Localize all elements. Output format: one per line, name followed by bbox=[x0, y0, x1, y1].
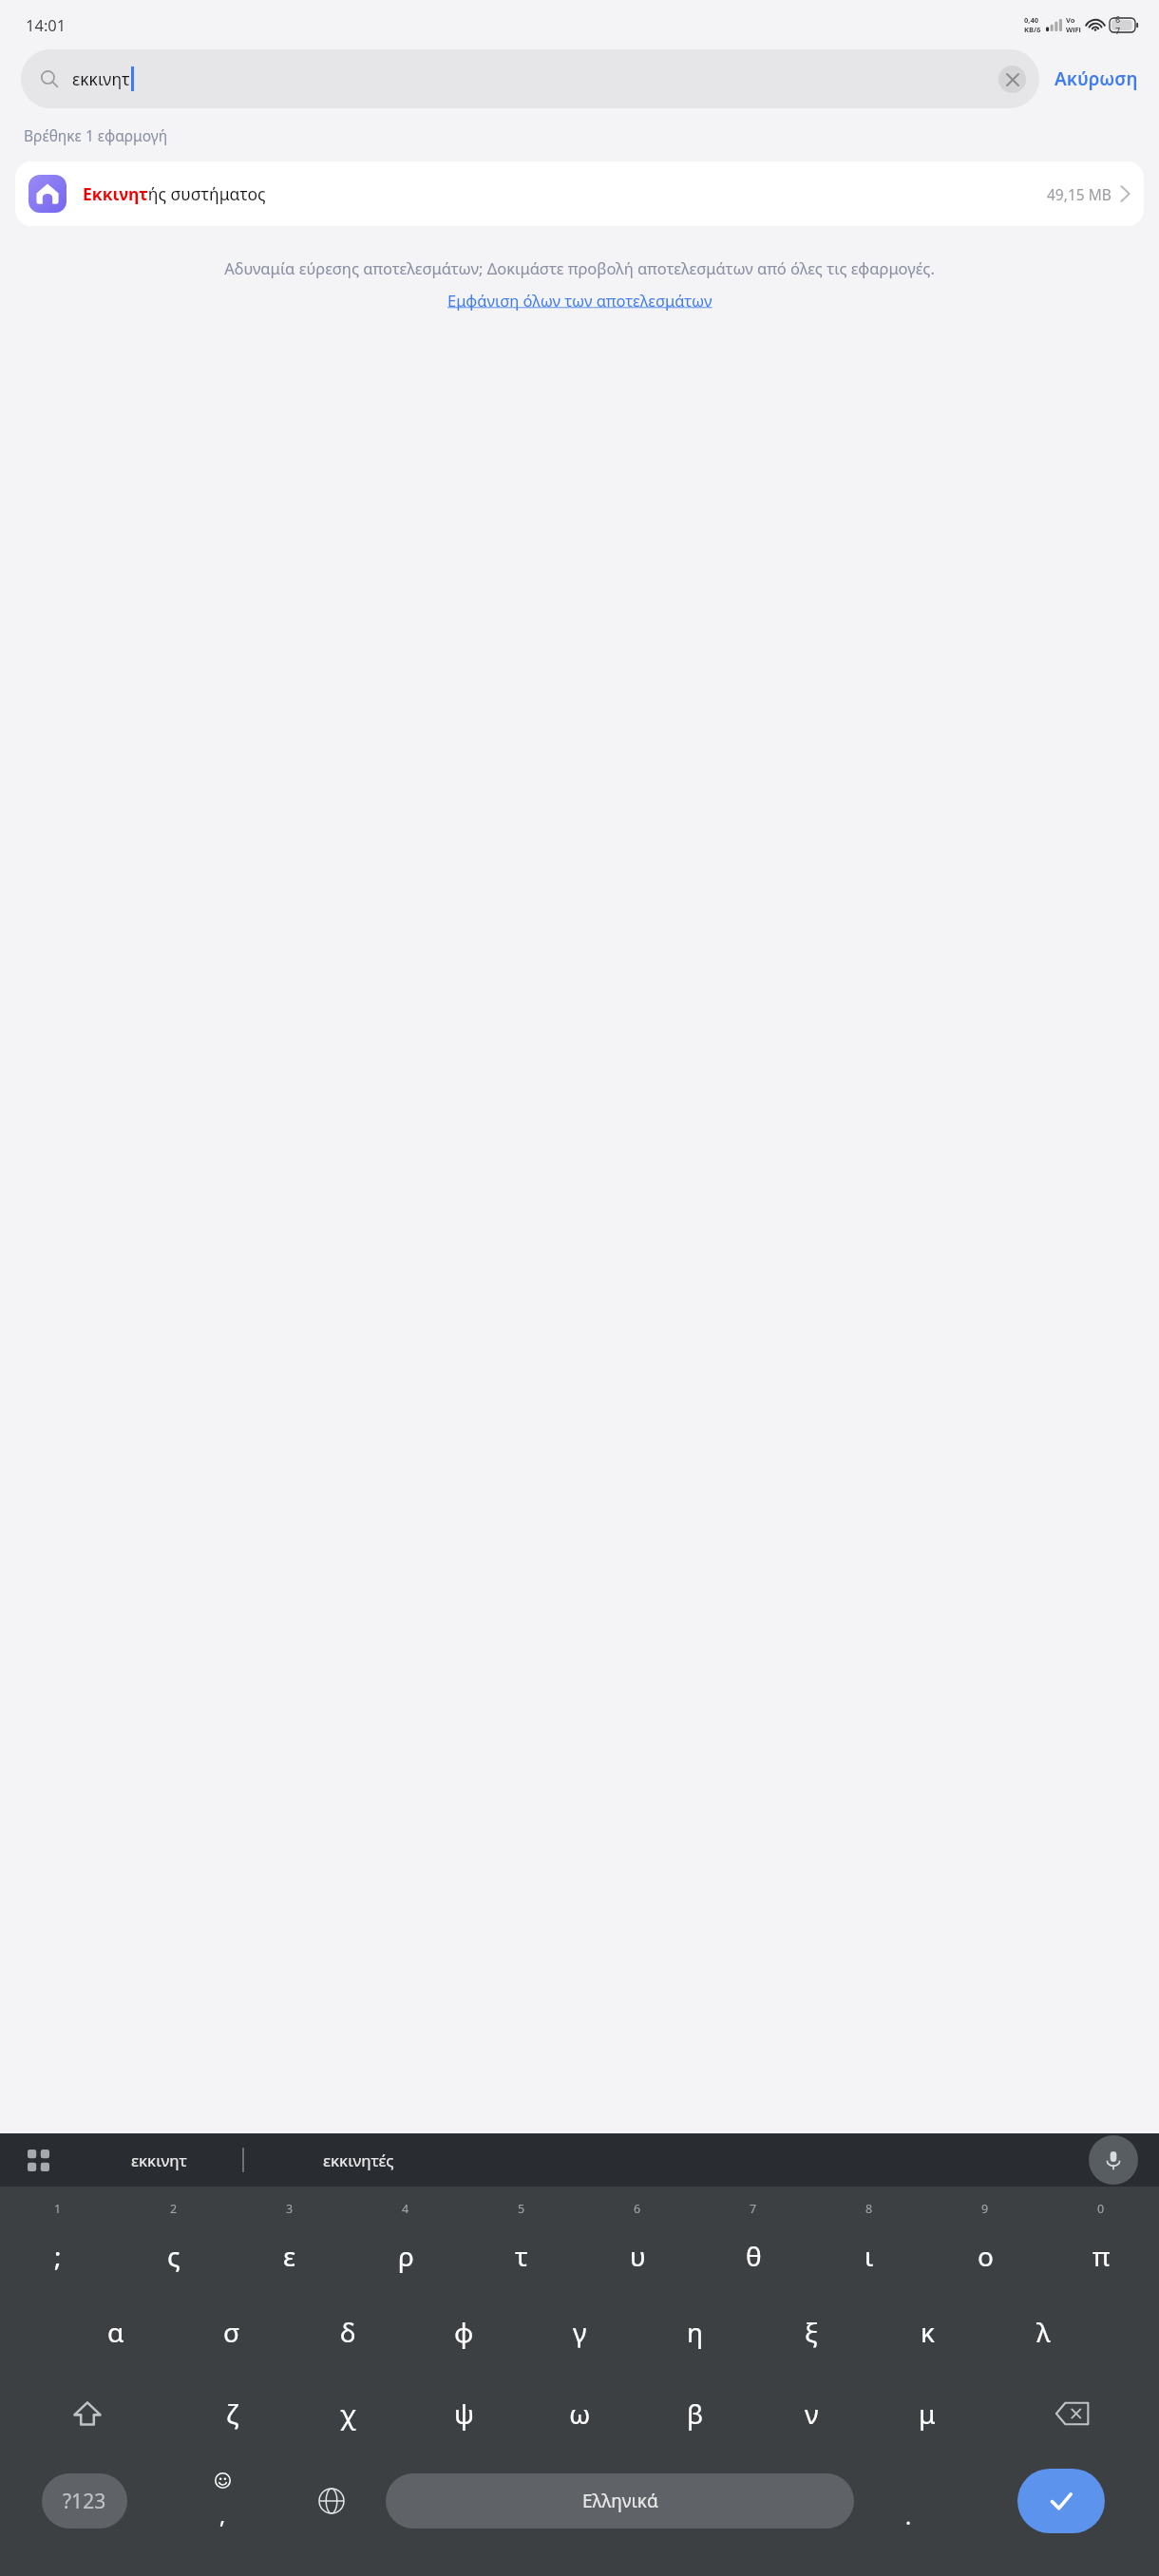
staticText: μ bbox=[919, 2396, 936, 2432]
button[interactable]: Emoji and comma bbox=[168, 2454, 276, 2548]
button[interactable]: Voice input bbox=[1089, 2135, 1138, 2185]
button[interactable]: π bbox=[1043, 2221, 1159, 2291]
button[interactable]: Change language bbox=[276, 2454, 386, 2548]
staticText: WiFi bbox=[1066, 25, 1081, 34]
button[interactable]: ω bbox=[522, 2373, 637, 2454]
button[interactable]: φ bbox=[406, 2291, 522, 2373]
button[interactable]: λ bbox=[985, 2291, 1101, 2373]
staticText: ι bbox=[864, 2238, 874, 2274]
staticText: ?123 bbox=[63, 2488, 106, 2515]
staticText: KB/δ bbox=[1024, 25, 1041, 34]
other: Open app details bbox=[1120, 184, 1130, 203]
staticText: εκκινητ bbox=[131, 2150, 187, 2171]
button[interactable]: Backspace bbox=[985, 2373, 1159, 2454]
staticText: κ bbox=[921, 2314, 935, 2350]
button[interactable]: σ bbox=[174, 2291, 290, 2373]
staticText: εκκινητές bbox=[323, 2150, 394, 2171]
staticText: ο bbox=[978, 2238, 994, 2274]
staticText: λ bbox=[1036, 2314, 1051, 2350]
staticText: σ bbox=[223, 2314, 240, 2350]
button[interactable]: εκκινητ bbox=[21, 49, 1039, 108]
button[interactable]: ι bbox=[811, 2221, 927, 2291]
button[interactable]: Shift bbox=[0, 2373, 174, 2454]
button[interactable]: χ bbox=[290, 2373, 406, 2454]
button[interactable]: μ bbox=[869, 2373, 985, 2454]
staticText: π bbox=[1092, 2238, 1111, 2274]
button[interactable]: ς bbox=[116, 2221, 232, 2291]
staticText: 4 bbox=[402, 2201, 409, 2217]
button[interactable]: ?123 bbox=[42, 2473, 127, 2529]
staticText: , bbox=[219, 2500, 226, 2529]
staticText: Εμφάνιση όλων των αποτελεσμάτων bbox=[447, 290, 712, 311]
staticText: α bbox=[107, 2314, 124, 2350]
button[interactable]: η bbox=[637, 2291, 753, 2373]
staticText: 49,15 MB bbox=[1047, 184, 1111, 204]
staticText: χ bbox=[340, 2396, 356, 2432]
staticText: φ bbox=[454, 2314, 474, 2350]
button[interactable]: α bbox=[58, 2291, 174, 2373]
staticText: 5 bbox=[518, 2201, 525, 2217]
staticText: 14:01 bbox=[26, 14, 66, 35]
button[interactable]: υ bbox=[579, 2221, 695, 2291]
staticText: . bbox=[905, 2501, 912, 2530]
staticText: τ bbox=[515, 2238, 528, 2274]
button[interactable]: δ bbox=[290, 2291, 406, 2373]
staticText: θ bbox=[746, 2238, 762, 2274]
staticText: ζ bbox=[226, 2396, 238, 2432]
staticText: 8 bbox=[865, 2201, 873, 2217]
button[interactable]: εκκινητές bbox=[244, 2133, 472, 2187]
button[interactable]: Clear text bbox=[998, 66, 1026, 93]
staticText: εκκινητ bbox=[72, 67, 130, 90]
staticText: ; bbox=[54, 2238, 62, 2274]
staticText: Ελληνικά bbox=[582, 2489, 658, 2513]
button[interactable]: ψ bbox=[406, 2373, 522, 2454]
button[interactable]: Period bbox=[854, 2454, 963, 2548]
staticText: Εκκινητής συστήματος bbox=[83, 182, 266, 205]
staticText: 9 bbox=[981, 2201, 989, 2217]
staticText: 2 bbox=[170, 2201, 178, 2217]
button[interactable]: Ακύρωση bbox=[1039, 49, 1140, 108]
staticText: ν bbox=[805, 2396, 819, 2432]
staticText: 1 bbox=[54, 2201, 62, 2217]
button[interactable]: εκκινητ bbox=[76, 2133, 242, 2187]
staticText: 6 bbox=[634, 2201, 641, 2217]
staticText: 0,40 bbox=[1024, 15, 1039, 25]
staticText: ξ bbox=[805, 2314, 818, 2350]
button[interactable]: τ bbox=[464, 2221, 579, 2291]
button[interactable]: κ bbox=[869, 2291, 985, 2373]
button[interactable]: ο bbox=[927, 2221, 1043, 2291]
staticText: Vo bbox=[1066, 15, 1075, 25]
staticText: 0 bbox=[1097, 2201, 1105, 2217]
button[interactable]: γ bbox=[522, 2291, 637, 2373]
button[interactable]: ζ bbox=[174, 2373, 290, 2454]
staticText: υ bbox=[630, 2238, 646, 2274]
staticText: Βρέθηκε 1 εφαρμογή bbox=[24, 125, 168, 145]
button[interactable]: Search bbox=[1017, 2469, 1105, 2533]
staticText: η bbox=[687, 2314, 704, 2350]
button[interactable]: ν bbox=[753, 2373, 869, 2454]
button[interactable]: Εμφάνιση όλων των αποτελεσμάτων bbox=[444, 288, 716, 313]
staticText: ς bbox=[167, 2238, 180, 2274]
button[interactable]: ε bbox=[232, 2221, 348, 2291]
staticText: β bbox=[687, 2396, 704, 2432]
button[interactable]: Εκκινητής συστήματος bbox=[15, 161, 1144, 226]
staticText: ρ bbox=[398, 2238, 414, 2274]
button[interactable]: β bbox=[637, 2373, 753, 2454]
staticText: Αδυναμία εύρεσης αποτελεσμάτων; Δοκιμάστ… bbox=[224, 257, 935, 278]
staticText: ω bbox=[569, 2396, 591, 2432]
staticText: γ bbox=[573, 2314, 587, 2350]
staticText: ψ bbox=[454, 2396, 474, 2432]
staticText: Ακύρωση bbox=[1054, 66, 1138, 91]
button[interactable]: ; bbox=[0, 2221, 116, 2291]
staticText: 3 bbox=[286, 2201, 294, 2217]
button[interactable]: ξ bbox=[753, 2291, 869, 2373]
button[interactable]: Keyboard options bbox=[0, 2133, 76, 2187]
staticText: 7 bbox=[750, 2201, 757, 2217]
button[interactable]: Ελληνικά bbox=[386, 2473, 854, 2529]
button[interactable]: ρ bbox=[348, 2221, 464, 2291]
staticText: ε bbox=[283, 2238, 296, 2274]
button[interactable]: θ bbox=[695, 2221, 811, 2291]
staticText: δ bbox=[340, 2314, 356, 2350]
